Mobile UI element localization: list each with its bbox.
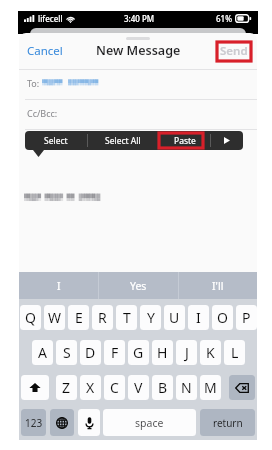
staticText: Select All bbox=[105, 135, 141, 147]
button[interactable]: I'll bbox=[179, 272, 257, 299]
staticText: Q bbox=[25, 308, 36, 327]
button[interactable]: J bbox=[176, 340, 197, 365]
staticText: B bbox=[158, 378, 168, 397]
button[interactable]: More options bbox=[211, 131, 243, 150]
button[interactable]: N bbox=[176, 375, 197, 400]
button[interactable]: X bbox=[80, 375, 101, 400]
button[interactable]: K bbox=[200, 340, 221, 365]
button[interactable]: S bbox=[56, 340, 77, 365]
staticText: D bbox=[85, 343, 96, 362]
button[interactable]: M bbox=[200, 375, 221, 400]
staticText: P bbox=[242, 308, 251, 327]
staticText: C bbox=[110, 378, 119, 397]
button[interactable]: Select bbox=[25, 131, 87, 150]
staticText: To: bbox=[27, 77, 40, 89]
staticText: I bbox=[196, 308, 201, 327]
button[interactable]: space bbox=[103, 409, 196, 436]
staticText: Cancel bbox=[27, 43, 63, 59]
staticText: 61% bbox=[216, 13, 232, 24]
staticText: Send bbox=[220, 43, 248, 59]
button[interactable]: Z bbox=[56, 375, 77, 400]
staticText: H bbox=[157, 343, 168, 362]
staticText: F bbox=[111, 343, 119, 362]
button[interactable]: U bbox=[164, 305, 185, 330]
button[interactable]: Delete bbox=[229, 375, 255, 400]
button[interactable]: return bbox=[200, 409, 255, 436]
staticText: S bbox=[63, 343, 71, 362]
staticText: lifecell bbox=[38, 13, 63, 24]
staticText: E bbox=[75, 308, 83, 327]
staticText: M bbox=[204, 378, 217, 397]
button[interactable]: E bbox=[68, 305, 89, 330]
staticText: K bbox=[206, 343, 215, 362]
staticText: W bbox=[48, 308, 62, 327]
staticText: O bbox=[217, 308, 228, 327]
staticText: T bbox=[123, 308, 131, 327]
button[interactable]: Dictation bbox=[78, 409, 100, 436]
staticText: New Message bbox=[96, 42, 181, 59]
staticText: 3:40 PM bbox=[124, 13, 155, 24]
staticText: Cc/Bcc: bbox=[27, 107, 58, 119]
button[interactable]: I bbox=[19, 272, 98, 299]
button[interactable]: Select All bbox=[88, 131, 158, 150]
staticText: Y bbox=[147, 308, 155, 327]
button[interactable]: I bbox=[188, 305, 209, 330]
button[interactable]: W bbox=[44, 305, 65, 330]
button[interactable]: Paste bbox=[159, 131, 210, 150]
staticText: U bbox=[169, 308, 180, 327]
button[interactable]: L bbox=[224, 340, 245, 365]
staticText: return bbox=[213, 416, 243, 430]
button[interactable]: C bbox=[104, 375, 125, 400]
button[interactable]: Q bbox=[20, 305, 41, 330]
button[interactable]: Switch keyboard language bbox=[50, 409, 74, 436]
button[interactable]: P bbox=[236, 305, 257, 330]
button[interactable]: B bbox=[152, 375, 173, 400]
button[interactable]: Shift bbox=[21, 375, 49, 400]
staticText: R bbox=[98, 308, 107, 327]
staticText: Paste bbox=[174, 135, 196, 147]
button[interactable]: A bbox=[32, 340, 53, 365]
button[interactable]: T bbox=[116, 305, 137, 330]
staticText: A bbox=[38, 343, 47, 362]
button[interactable]: O bbox=[212, 305, 233, 330]
staticText: space bbox=[135, 416, 164, 430]
staticText: 123 bbox=[25, 416, 43, 430]
staticText: I'll bbox=[212, 279, 224, 293]
button[interactable]: Y bbox=[140, 305, 161, 330]
staticText: J bbox=[185, 343, 189, 362]
button[interactable]: 123 bbox=[21, 409, 46, 436]
staticText: V bbox=[134, 378, 143, 397]
staticText: Z bbox=[62, 378, 71, 397]
button[interactable]: F bbox=[104, 340, 125, 365]
button[interactable]: Cancel bbox=[23, 40, 67, 62]
staticText: X bbox=[86, 378, 95, 397]
staticText: G bbox=[133, 343, 144, 362]
staticText: N bbox=[181, 378, 192, 397]
button[interactable]: D bbox=[80, 340, 101, 365]
staticText: I bbox=[57, 279, 61, 293]
button[interactable]: Yes bbox=[99, 272, 178, 299]
button[interactable]: G bbox=[128, 340, 149, 365]
staticText: Select bbox=[44, 135, 68, 147]
button[interactable]: R bbox=[92, 305, 113, 330]
staticText: L bbox=[231, 343, 239, 362]
staticText: Yes bbox=[130, 279, 147, 293]
button[interactable]: Send bbox=[216, 40, 252, 62]
button[interactable]: V bbox=[128, 375, 149, 400]
button[interactable]: H bbox=[152, 340, 173, 365]
